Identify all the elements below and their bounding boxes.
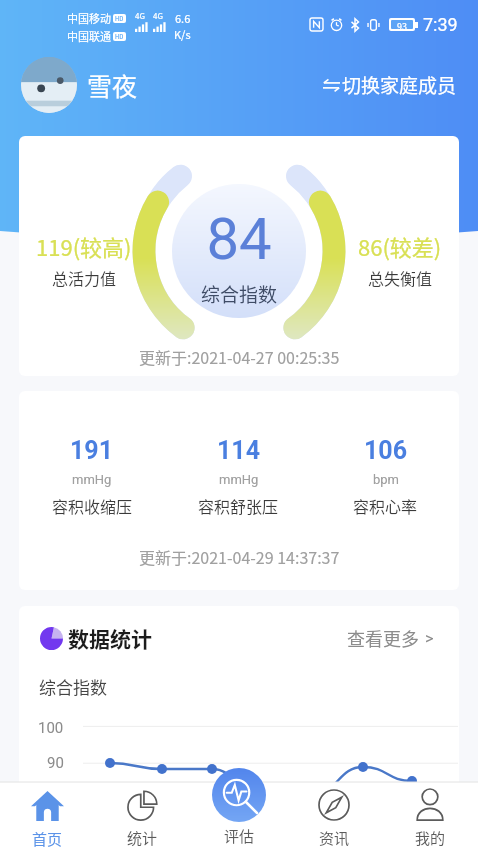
staticText: 119(较高): [36, 230, 132, 262]
staticText: K/s: [174, 26, 191, 42]
staticText: 更新于:2021-04-27 00:25:35: [139, 345, 340, 368]
staticText: 7:39: [423, 14, 458, 35]
staticText: 雪夜: [87, 67, 138, 103]
button[interactable]: 切换家庭成员: [323, 71, 457, 99]
staticText: 100: [38, 719, 64, 737]
button[interactable]: Avatar: [21, 57, 77, 113]
staticText: 4G: [135, 10, 145, 22]
staticText: 容积收缩压: [52, 494, 133, 517]
button[interactable]: 首页: [0, 782, 95, 850]
staticText: 84: [19, 205, 459, 273]
staticText: 90: [47, 754, 64, 772]
button[interactable]: 资讯: [286, 782, 382, 850]
staticText: >: [425, 629, 434, 648]
staticText: 数据统计: [68, 623, 152, 653]
staticText: 191: [70, 436, 114, 465]
staticText: 中国移动: [67, 10, 111, 26]
staticText: 中国联通: [67, 28, 111, 44]
staticText: 114: [217, 436, 261, 465]
staticText: 更新于:2021-04-29 14:37:37: [139, 545, 340, 568]
staticText: 总活力值: [52, 266, 117, 289]
staticText: 86(较差): [358, 230, 442, 262]
staticText: 容积舒张压: [198, 494, 279, 517]
staticText: 综合指数: [19, 280, 459, 308]
button[interactable]: 我的: [382, 782, 478, 850]
staticText: 6.6: [175, 10, 191, 26]
staticText: 106: [364, 436, 408, 465]
staticText: 4G: [153, 10, 163, 22]
staticText: 查看更多: [347, 625, 419, 651]
staticText: 容积心率: [353, 494, 418, 517]
staticText: 资讯: [319, 827, 350, 849]
staticText: 统计: [127, 827, 158, 849]
button[interactable]: 查看更多: [347, 625, 434, 651]
staticText: 评估: [224, 825, 255, 847]
staticText: 我的: [415, 827, 446, 849]
staticText: 总失衡值: [368, 266, 433, 289]
staticText: 综合指数: [39, 674, 107, 699]
staticText: 首页: [32, 828, 63, 850]
staticText: bpm: [373, 472, 399, 487]
staticText: HD: [115, 32, 124, 41]
staticText: 93: [397, 20, 407, 29]
staticText: HD: [115, 14, 124, 23]
button[interactable]: 统计: [95, 782, 190, 850]
button[interactable]: 评估: [212, 768, 266, 822]
staticText: 切换家庭成员: [342, 71, 457, 99]
staticText: mmHg: [72, 472, 112, 487]
staticText: mmHg: [219, 472, 259, 487]
